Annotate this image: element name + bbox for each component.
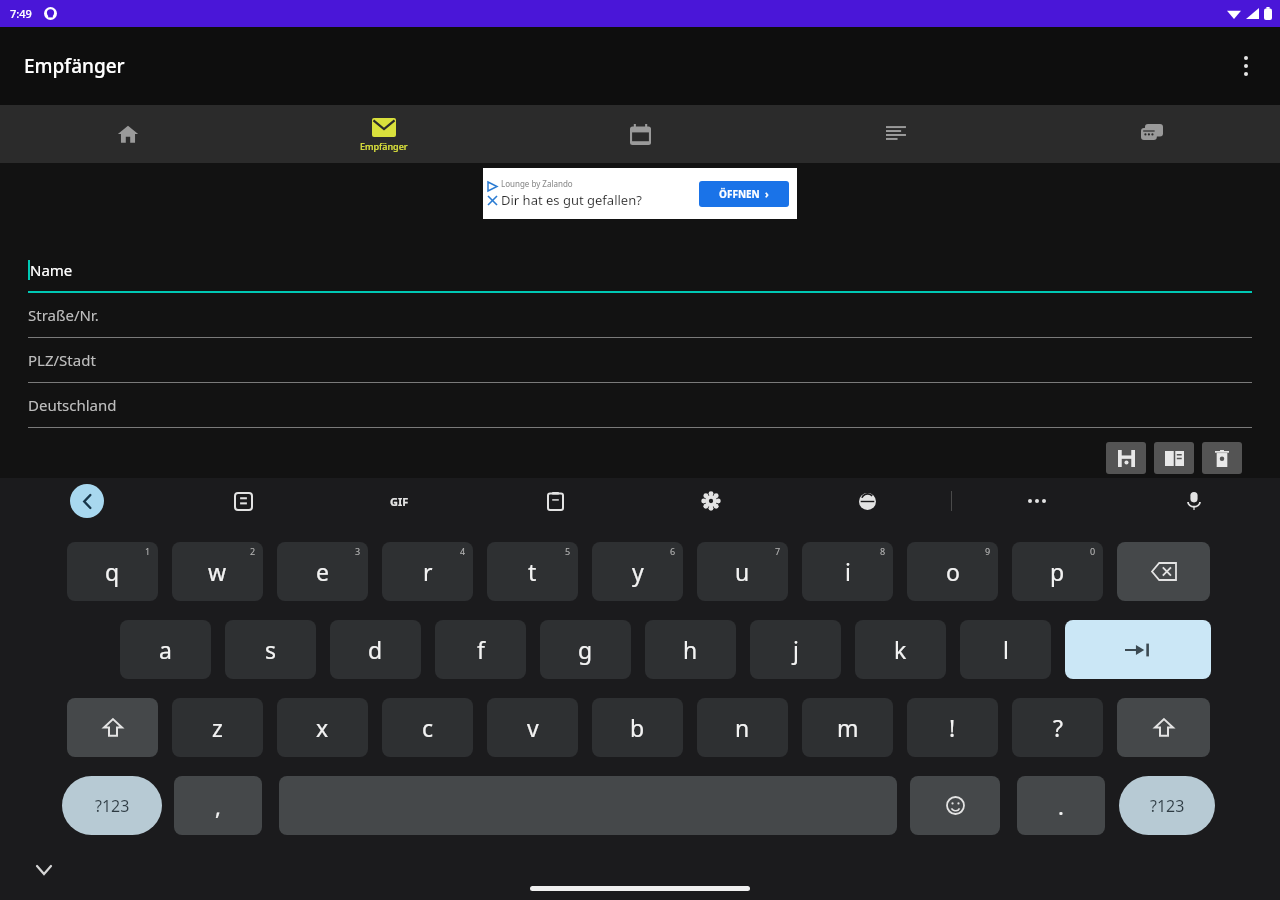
staticText: Name xyxy=(30,260,73,280)
button[interactable]: l xyxy=(960,620,1051,679)
button[interactable]: Straße/Nr. xyxy=(28,293,1252,338)
button[interactable]: ?123 xyxy=(1119,776,1215,835)
staticText: c xyxy=(422,712,434,743)
button[interactable]: Hide keyboard xyxy=(28,854,60,886)
button[interactable]: ?123 xyxy=(62,776,162,835)
button[interactable]: Shift xyxy=(67,698,158,757)
staticText: 7:49 xyxy=(10,6,32,21)
button[interactable]: w xyxy=(172,542,263,601)
button[interactable]: Back xyxy=(70,484,104,518)
button[interactable]: v xyxy=(487,698,578,757)
staticText: k xyxy=(894,634,907,665)
button[interactable]: List xyxy=(768,105,1024,163)
staticText: Straße/Nr. xyxy=(28,305,99,325)
button[interactable]: u xyxy=(697,542,788,601)
button[interactable]: Empfänger xyxy=(256,105,512,163)
staticText: z xyxy=(212,712,223,743)
button[interactable]: Stickers xyxy=(226,481,260,521)
button[interactable]: More xyxy=(1020,481,1054,521)
button[interactable]: m xyxy=(802,698,893,757)
button[interactable]: Clipboard xyxy=(538,481,572,521)
staticText: l xyxy=(1003,634,1009,665)
button[interactable]: q xyxy=(67,542,158,601)
button[interactable]: Translate xyxy=(850,481,884,521)
button[interactable]: Next field xyxy=(1065,620,1211,679)
button[interactable]: ÖFFNEN › xyxy=(699,181,789,207)
button[interactable]: Settings xyxy=(694,481,728,521)
button[interactable]: n xyxy=(697,698,788,757)
button[interactable]: b xyxy=(592,698,683,757)
button[interactable]: Delete xyxy=(1202,442,1242,474)
button[interactable]: More options xyxy=(1224,44,1268,88)
staticText: ÖFFNEN › xyxy=(719,187,769,201)
staticText: 7 xyxy=(775,545,781,557)
staticText: 0 xyxy=(1090,545,1096,557)
button[interactable]: GIF xyxy=(382,481,416,521)
staticText: 4 xyxy=(460,545,466,557)
button[interactable]: Calendar xyxy=(512,105,768,163)
button[interactable]: h xyxy=(645,620,736,679)
staticText: Dir hat es gut gefallen? xyxy=(501,191,642,209)
button[interactable]: Backspace xyxy=(1117,542,1210,601)
staticText: Deutschland xyxy=(28,395,117,415)
button[interactable]: c xyxy=(382,698,473,757)
button[interactable]: Home xyxy=(0,105,256,163)
staticText: ? xyxy=(1053,712,1063,743)
staticText: j xyxy=(793,634,799,665)
button[interactable]: p xyxy=(1012,542,1103,601)
staticText: w xyxy=(208,556,227,587)
button[interactable]: d xyxy=(330,620,421,679)
button[interactable]: k xyxy=(855,620,946,679)
button[interactable]: j xyxy=(750,620,841,679)
button[interactable]: z xyxy=(172,698,263,757)
button[interactable]: r xyxy=(382,542,473,601)
button[interactable]: Contacts xyxy=(1154,442,1194,474)
staticText: 3 xyxy=(355,545,361,557)
button[interactable]: ! xyxy=(907,698,998,757)
button[interactable]: Deutschland xyxy=(28,383,1252,428)
button[interactable]: PLZ/Stadt xyxy=(28,338,1252,383)
button[interactable]: g xyxy=(540,620,631,679)
staticText: ?123 xyxy=(1150,795,1185,817)
staticText: q xyxy=(105,556,120,587)
button[interactable]: ? xyxy=(1012,698,1103,757)
button[interactable]: x xyxy=(277,698,368,757)
staticText: PLZ/Stadt xyxy=(28,350,96,370)
button[interactable]: t xyxy=(487,542,578,601)
button[interactable]: Shift xyxy=(1117,698,1210,757)
staticText: u xyxy=(735,556,750,587)
button[interactable]: s xyxy=(225,620,316,679)
button[interactable]: Name xyxy=(28,248,1252,293)
button[interactable]: a xyxy=(120,620,211,679)
staticText: v xyxy=(527,712,539,743)
staticText: g xyxy=(578,634,593,665)
button[interactable]: e xyxy=(277,542,368,601)
staticText: ?123 xyxy=(95,795,130,817)
staticText: 5 xyxy=(565,545,571,557)
staticText: n xyxy=(735,712,750,743)
staticText: o xyxy=(946,556,960,587)
staticText: 1 xyxy=(145,545,151,557)
button[interactable]: , xyxy=(174,776,262,835)
button[interactable]: Save xyxy=(1106,442,1146,474)
button[interactable]: Voice input xyxy=(1177,481,1211,521)
staticText: r xyxy=(423,556,433,587)
button[interactable]: Lounge by Zalando xyxy=(483,168,797,219)
button[interactable]: Emoji xyxy=(910,776,1000,835)
staticText: y xyxy=(632,556,644,587)
staticText: 6 xyxy=(670,545,676,557)
button[interactable]: . xyxy=(1017,776,1105,835)
button[interactable]: Messages xyxy=(1024,105,1280,163)
staticText: d xyxy=(368,634,383,665)
staticText: 8 xyxy=(880,545,886,557)
button[interactable]: i xyxy=(802,542,893,601)
staticText: m xyxy=(837,712,859,743)
button[interactable]: y xyxy=(592,542,683,601)
button[interactable]: o xyxy=(907,542,998,601)
button[interactable]: f xyxy=(435,620,526,679)
staticText: i xyxy=(845,556,851,587)
staticText: t xyxy=(528,556,537,587)
staticText: h xyxy=(683,634,698,665)
staticText: . xyxy=(1058,791,1064,821)
